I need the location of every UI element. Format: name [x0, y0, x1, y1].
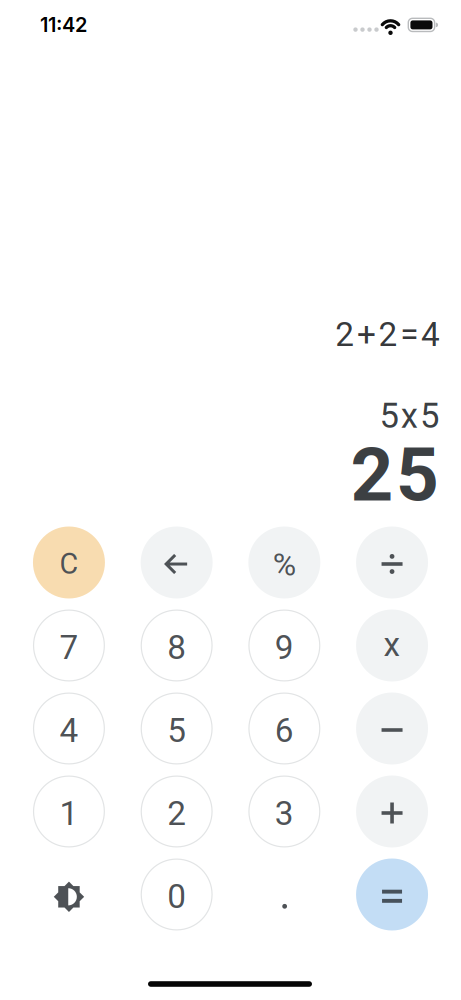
- staticText: 3: [275, 794, 294, 833]
- staticText: 0: [167, 877, 186, 916]
- staticText: 2: [379, 315, 398, 354]
- button[interactable]: Equals: [356, 858, 428, 930]
- staticText: 11:42: [40, 13, 87, 37]
- staticText: 25: [350, 431, 439, 519]
- button[interactable]: Plus: [356, 775, 428, 847]
- staticText: 2: [335, 315, 354, 354]
- staticText: 7: [59, 628, 78, 667]
- staticText: 5: [167, 711, 186, 750]
- staticText: =: [400, 315, 418, 354]
- button[interactable]: 0: [141, 858, 213, 930]
- button[interactable]: 4: [33, 692, 105, 764]
- button[interactable]: Toggle theme: [33, 858, 105, 930]
- button[interactable]: 2: [141, 775, 213, 847]
- staticText: 4: [421, 315, 440, 354]
- button[interactable]: 1: [33, 775, 105, 847]
- button[interactable]: Divide: [356, 526, 428, 598]
- button[interactable]: 3: [248, 775, 320, 847]
- button[interactable]: Backspace: [141, 526, 213, 598]
- staticText: 5x5: [379, 396, 439, 436]
- staticText: C: [59, 547, 78, 581]
- button[interactable]: 7: [33, 609, 105, 681]
- button[interactable]: Decimal point: [248, 858, 320, 930]
- staticText: 1: [59, 794, 78, 833]
- staticText: %: [273, 546, 296, 583]
- staticText: 4: [59, 711, 78, 750]
- button[interactable]: x: [356, 609, 428, 681]
- button[interactable]: 5: [141, 692, 213, 764]
- staticText: 6: [275, 711, 294, 750]
- staticText: 9: [275, 628, 294, 667]
- staticText: x: [384, 625, 401, 664]
- button[interactable]: 6: [248, 692, 320, 764]
- staticText: 2: [167, 794, 186, 833]
- button[interactable]: 8: [141, 609, 213, 681]
- button[interactable]: Minus: [356, 692, 428, 764]
- button[interactable]: 9: [248, 609, 320, 681]
- button[interactable]: C: [33, 526, 105, 598]
- staticText: 8: [167, 628, 186, 667]
- button[interactable]: %: [248, 526, 320, 598]
- staticText: +: [357, 315, 376, 354]
